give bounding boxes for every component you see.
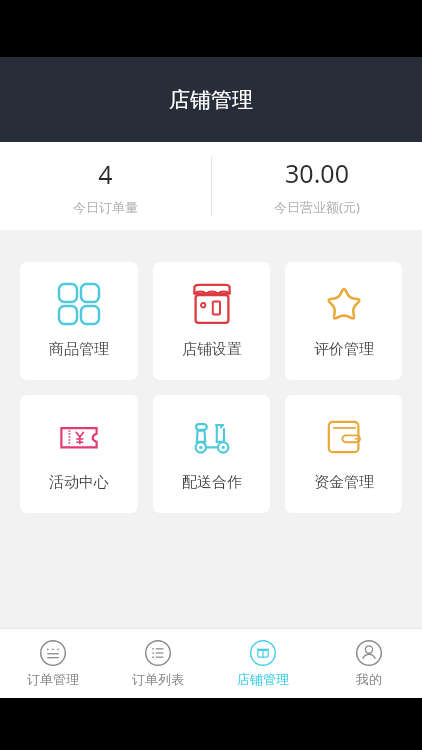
other: 我的 <box>356 640 382 666</box>
staticText: 活动中心 <box>49 473 109 492</box>
other: 订单管理 <box>40 640 66 666</box>
button[interactable]: 订单列表 <box>105 628 210 698</box>
button[interactable]: 店铺管理 <box>210 628 316 698</box>
staticText: 配送合作 <box>182 473 242 492</box>
staticText: 今日营业额(元) <box>274 198 360 216</box>
other: 店铺管理 <box>250 640 276 666</box>
staticText: 资金管理 <box>314 473 374 492</box>
staticText: 4 <box>98 157 113 191</box>
button[interactable]: 评价管理 <box>285 262 402 380</box>
staticText: 店铺管理 <box>169 87 253 113</box>
staticText: 订单管理 <box>27 671 79 687</box>
staticText: 我的 <box>356 671 382 687</box>
button[interactable]: 商品管理 <box>20 262 138 380</box>
staticText: 今日订单量 <box>73 199 138 215</box>
staticText: 评价管理 <box>314 340 374 359</box>
button[interactable]: 我的 <box>316 628 422 698</box>
button[interactable]: 活动中心 <box>20 395 138 513</box>
staticText: 商品管理 <box>49 340 109 359</box>
button[interactable]: 配送合作 <box>153 395 270 513</box>
button[interactable]: 订单管理 <box>0 628 105 698</box>
button[interactable]: 店铺设置 <box>153 262 270 380</box>
staticText: 30.00 <box>285 156 349 190</box>
staticText: 店铺设置 <box>182 340 242 359</box>
staticText: 店铺管理 <box>237 671 289 687</box>
staticText: 订单列表 <box>132 671 184 687</box>
other: 订单列表 <box>145 640 171 666</box>
button[interactable]: 资金管理 <box>285 395 402 513</box>
